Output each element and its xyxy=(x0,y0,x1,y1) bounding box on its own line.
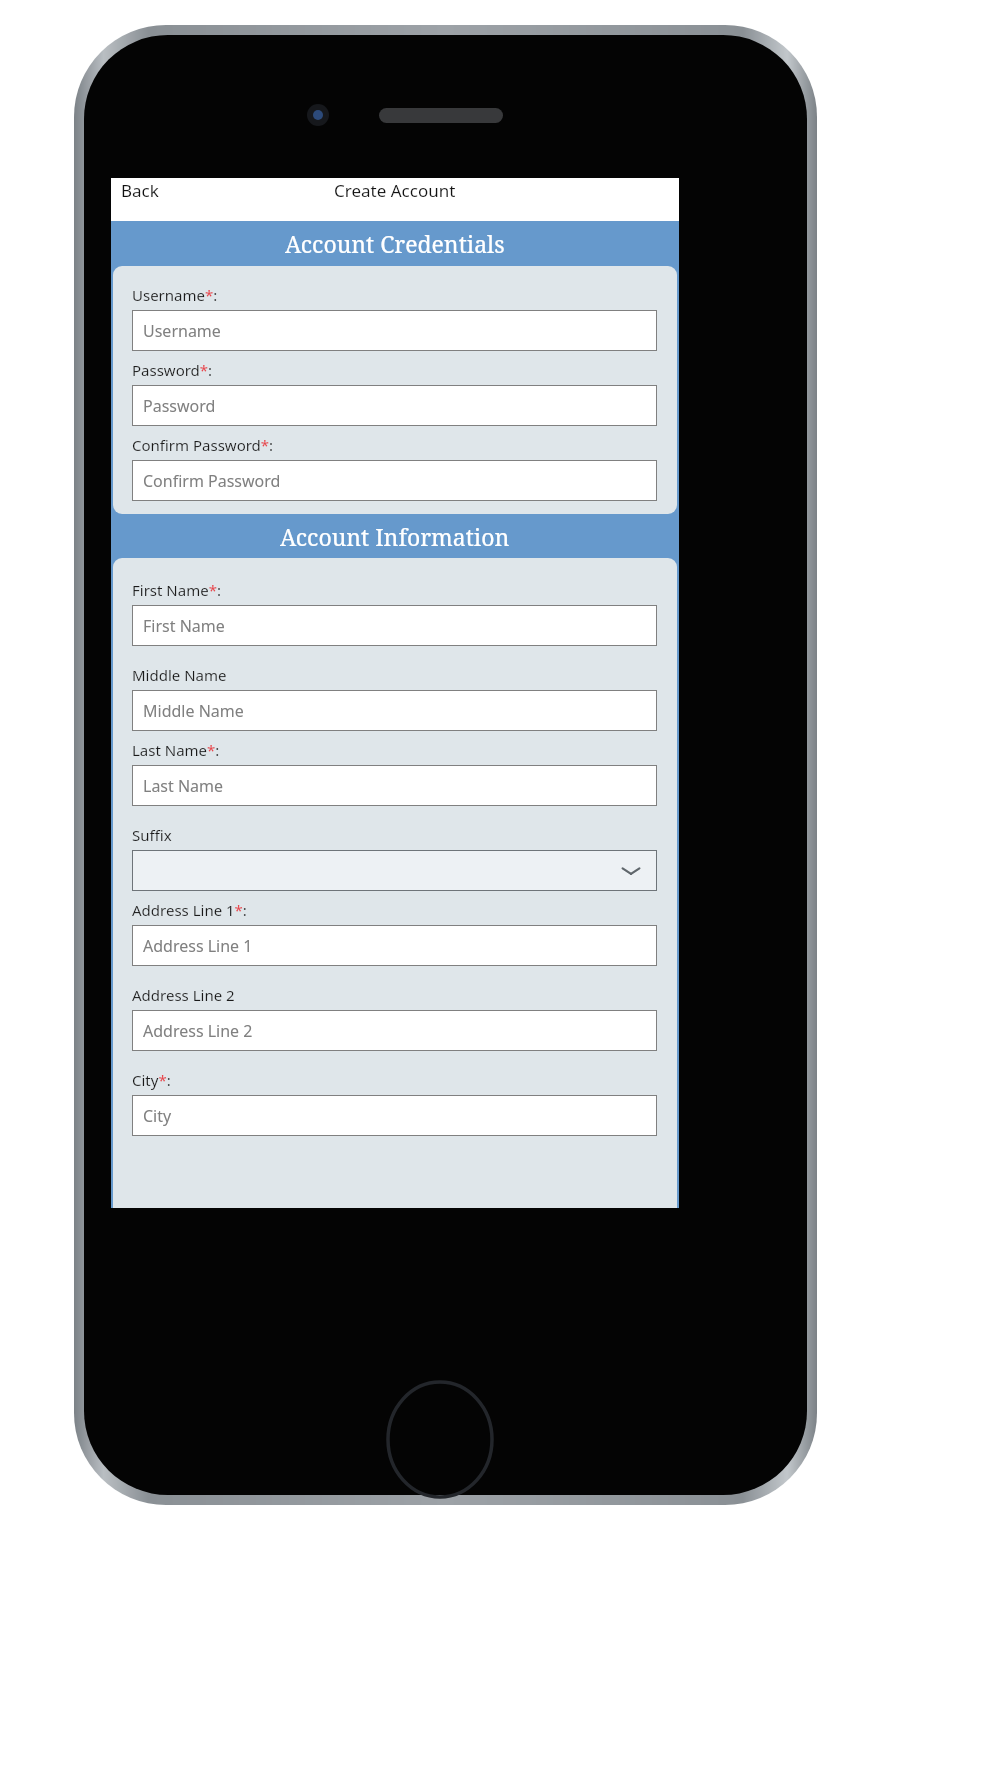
button[interactable]: First Name xyxy=(132,605,657,646)
button[interactable]: Password xyxy=(132,385,657,426)
staticText: Password*: xyxy=(132,360,213,380)
staticText: Last Name xyxy=(143,775,224,797)
staticText: Username xyxy=(143,320,221,342)
staticText: Suffix xyxy=(132,825,172,845)
staticText: Middle Name xyxy=(132,665,227,685)
button[interactable]: Back xyxy=(111,178,169,206)
staticText: Create Account xyxy=(334,179,456,202)
staticText: Account Information xyxy=(280,521,510,552)
staticText: City*: xyxy=(132,1070,171,1090)
staticText: First Name xyxy=(143,615,225,637)
button[interactable]: City xyxy=(132,1095,657,1136)
staticText: Account Credentials xyxy=(285,228,505,259)
staticText: Confirm Password*: xyxy=(132,435,274,455)
button[interactable]: Address Line 1 xyxy=(132,925,657,966)
staticText: Username*: xyxy=(132,285,218,305)
staticText: First Name*: xyxy=(132,580,221,600)
staticText: Address Line 1 xyxy=(143,935,253,957)
staticText: Back xyxy=(121,179,159,202)
staticText: Last Name*: xyxy=(132,740,220,760)
button[interactable]: Confirm Password xyxy=(132,460,657,501)
staticText: Address Line 2 xyxy=(143,1020,253,1042)
staticText: Address Line 2 xyxy=(132,985,235,1005)
staticText: City xyxy=(143,1105,172,1127)
staticText: Confirm Password xyxy=(143,470,281,492)
button[interactable]: Username xyxy=(132,310,657,351)
button[interactable]: Middle Name xyxy=(132,690,657,731)
button[interactable]: Last Name xyxy=(132,765,657,806)
button[interactable]: Select suffix xyxy=(132,850,657,891)
staticText: Password xyxy=(143,395,216,417)
staticText: Address Line 1*: xyxy=(132,900,247,920)
button[interactable]: Address Line 2 xyxy=(132,1010,657,1051)
staticText: Middle Name xyxy=(143,700,244,722)
